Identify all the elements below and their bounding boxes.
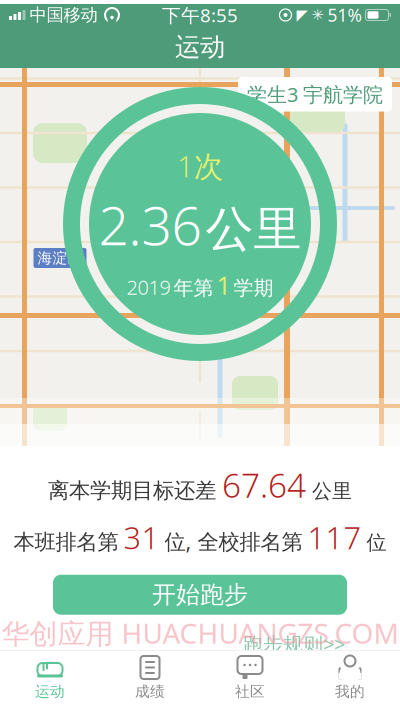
staticText: 本班排名第 (13, 529, 118, 555)
staticText: 位 (366, 530, 386, 555)
staticText: 社区 (235, 682, 265, 700)
staticText: ✳ (311, 7, 323, 23)
staticText: 年第 (173, 276, 213, 300)
button[interactable]: 成绩 (100, 649, 200, 706)
staticText: 1次 (177, 146, 223, 185)
button[interactable]: 开始跑步 (53, 575, 347, 615)
staticText: 2019 (126, 274, 170, 300)
staticText: 位, 全校排名第 (164, 527, 302, 555)
staticText: 中国移动 (29, 4, 97, 26)
staticText: 华创应用 HUACHUANGZS.COM (1, 614, 398, 652)
staticText: 运动 (35, 682, 65, 700)
button[interactable]: 社区 (200, 649, 300, 706)
staticText: 下午8:55 (162, 3, 238, 27)
staticText: ◤ (296, 7, 307, 23)
staticText: 开始跑步 (152, 580, 248, 609)
staticText: 跑步规则>> (243, 631, 345, 657)
staticText: 117 (307, 517, 361, 558)
staticText: 31 (123, 517, 159, 558)
staticText: 离本学期目标还差 (48, 478, 216, 504)
staticText: 公里 (312, 479, 352, 503)
staticText: 51% (327, 3, 361, 26)
staticText: 我的 (335, 682, 365, 700)
staticText: 海淀区 (37, 249, 82, 267)
staticText: 公里 (205, 200, 301, 259)
button[interactable]: 运动 (0, 649, 100, 706)
button[interactable]: 跑步规则>> (243, 627, 345, 661)
staticText: 67.64 (222, 463, 306, 507)
staticText: 1 (216, 268, 230, 302)
staticText: 成绩 (135, 682, 165, 700)
staticText: 学生3 宇航学院 (247, 81, 383, 108)
staticText: 2.36 (98, 189, 201, 260)
button[interactable]: 我的 (300, 649, 400, 706)
staticText: 运动 (175, 31, 225, 62)
staticText: 学期 (233, 276, 273, 300)
